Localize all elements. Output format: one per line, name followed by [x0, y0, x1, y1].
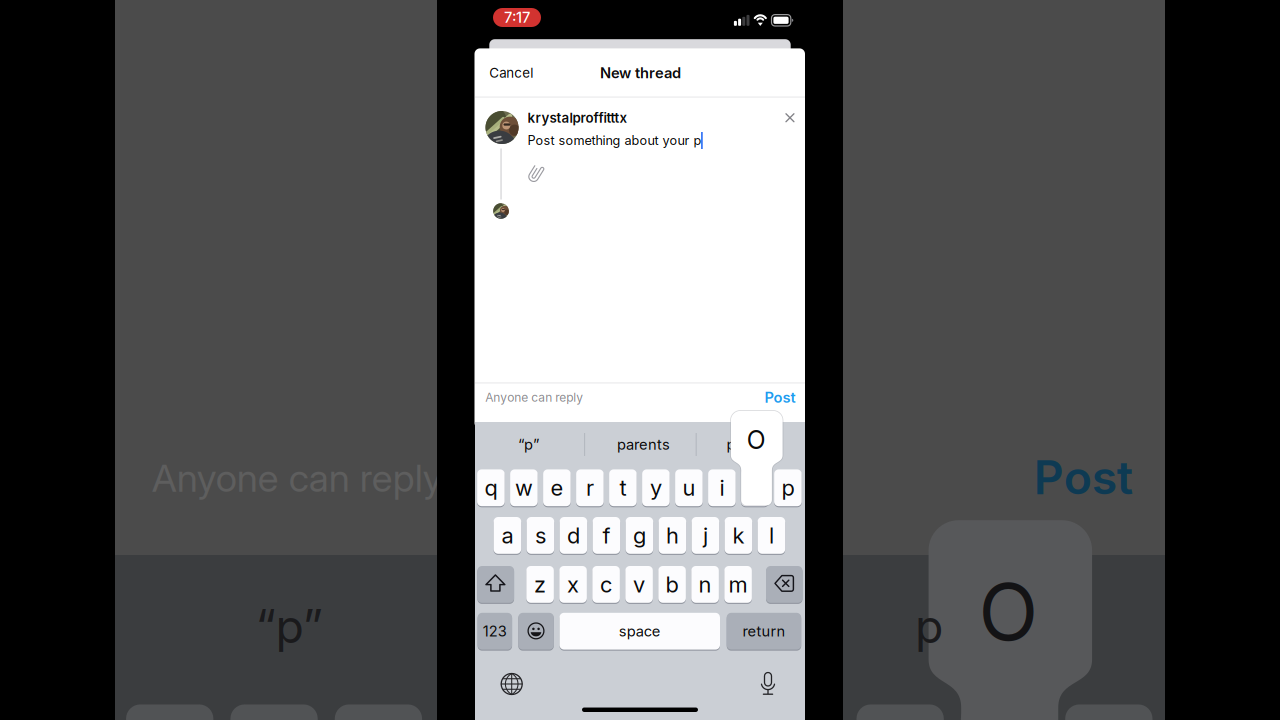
staticText: i: [719, 474, 724, 501]
button[interactable]: q: [477, 469, 505, 506]
button[interactable]: t: [609, 469, 637, 506]
button[interactable]: l: [758, 517, 785, 554]
button[interactable]: 123: [478, 613, 512, 650]
staticText: “p”: [518, 436, 539, 453]
staticText: t: [619, 474, 626, 501]
staticText: space: [619, 622, 661, 640]
staticText: s: [535, 522, 546, 549]
button[interactable]: Cancel: [489, 56, 545, 90]
staticText: 123: [483, 622, 507, 640]
button[interactable]: x: [559, 566, 587, 603]
button[interactable]: Remove: [777, 105, 803, 131]
staticText: e: [550, 474, 563, 501]
staticText: q: [484, 474, 497, 501]
staticText: 7:17: [504, 9, 530, 26]
button[interactable]: u: [675, 469, 703, 506]
staticText: Post: [1034, 449, 1133, 505]
button[interactable]: p: [774, 469, 802, 506]
staticText: z: [534, 571, 546, 598]
staticText: x: [567, 571, 579, 598]
button[interactable]: Delete: [766, 566, 802, 603]
staticText: v: [633, 571, 645, 598]
button[interactable]: r: [576, 469, 604, 506]
button[interactable]: s: [527, 517, 554, 554]
staticText: parents: [617, 436, 670, 453]
staticText: Post: [764, 388, 795, 406]
staticText: k: [732, 522, 744, 549]
staticText: return: [742, 622, 785, 640]
button[interactable]: g: [626, 517, 653, 554]
button[interactable]: w: [510, 469, 538, 506]
staticText: krystalproffitttx: [527, 110, 627, 126]
button[interactable]: Change keyboard: [494, 666, 530, 702]
staticText: Anyone can reply: [485, 390, 583, 405]
staticText: u: [682, 474, 695, 501]
button[interactable]: e: [543, 469, 571, 506]
button[interactable]: o: [741, 469, 769, 506]
staticText: m: [729, 571, 748, 598]
staticText: r: [586, 474, 594, 501]
button[interactable]: n: [691, 566, 719, 603]
staticText: Post something about your p: [527, 133, 701, 148]
staticText: f: [602, 522, 610, 549]
button[interactable]: d: [560, 517, 587, 554]
button[interactable]: Shift: [477, 566, 514, 603]
staticText: w: [515, 474, 533, 501]
staticText: O: [747, 425, 766, 455]
staticText: j: [703, 522, 708, 549]
button[interactable]: b: [658, 566, 686, 603]
button[interactable]: z: [526, 566, 554, 603]
staticText: Anyone can reply: [152, 455, 443, 501]
staticText: a: [501, 522, 513, 549]
staticText: c: [600, 571, 612, 598]
button[interactable]: v: [625, 566, 653, 603]
staticText: g: [633, 522, 646, 549]
staticText: p: [915, 598, 943, 654]
button[interactable]: j: [692, 517, 719, 554]
button[interactable]: f: [593, 517, 620, 554]
button[interactable]: Emoji: [518, 613, 554, 650]
staticText: p: [781, 474, 794, 501]
button[interactable]: space: [559, 613, 720, 650]
staticText: y: [650, 474, 662, 501]
button[interactable]: m: [724, 566, 752, 603]
button[interactable]: Dictate: [750, 666, 786, 702]
button[interactable]: return: [727, 613, 801, 650]
staticText: d: [567, 522, 580, 549]
staticText: l: [769, 522, 774, 549]
staticText: b: [666, 571, 679, 598]
button[interactable]: Post: [751, 382, 795, 412]
button[interactable]: k: [725, 517, 752, 554]
staticText: O: [979, 565, 1039, 659]
staticText: n: [699, 571, 712, 598]
button[interactable]: a: [494, 517, 521, 554]
button[interactable]: h: [659, 517, 686, 554]
staticText: New thread: [600, 64, 681, 82]
staticText: “p”: [255, 598, 322, 654]
staticText: p: [726, 436, 735, 453]
button[interactable]: c: [592, 566, 620, 603]
button[interactable]: i: [708, 469, 736, 506]
staticText: h: [666, 522, 679, 549]
staticText: Cancel: [489, 65, 533, 81]
button[interactable]: y: [642, 469, 670, 506]
